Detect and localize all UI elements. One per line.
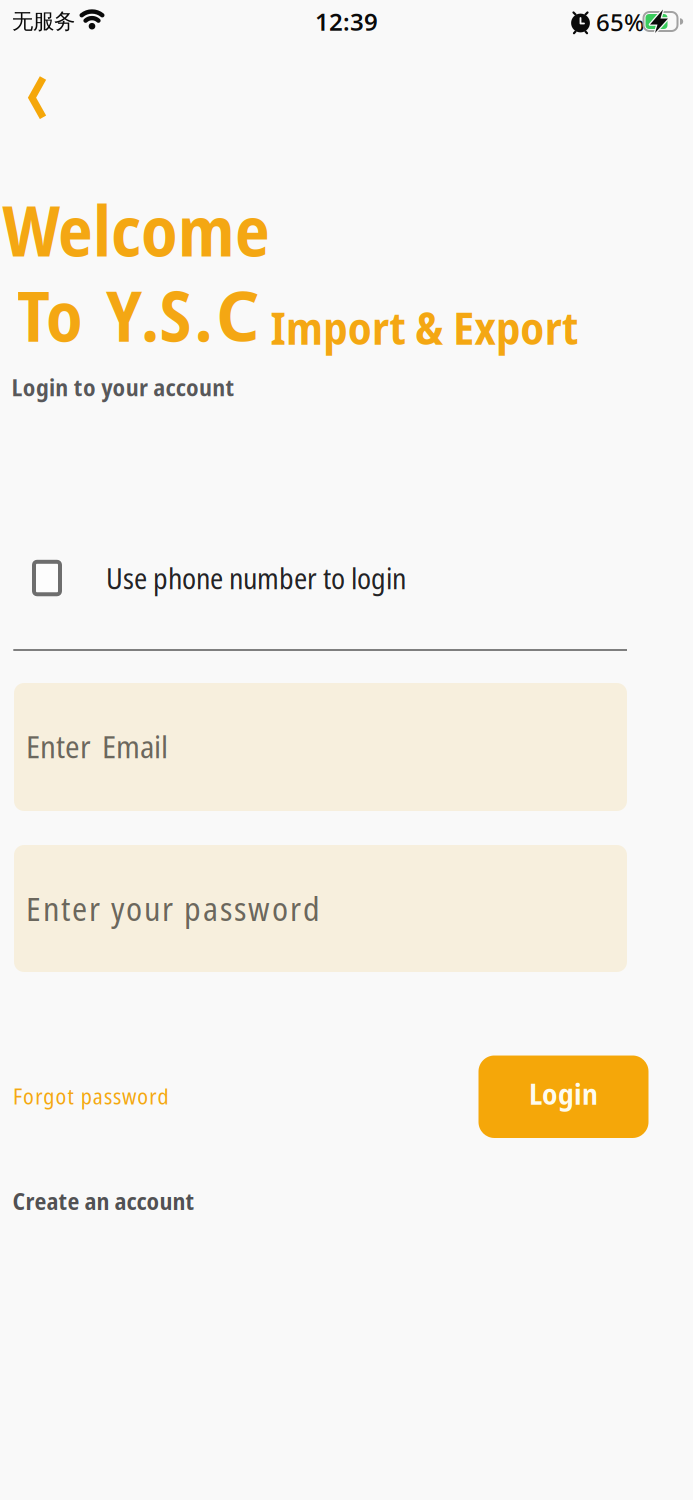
button[interactable]: Login [478,1055,648,1138]
staticText: 无服务 [12,8,75,35]
staticText: Login to your account [11,371,234,403]
staticText: Welcome [3,182,270,277]
button[interactable]: Enter Email [14,683,627,811]
staticText: Forgot password [13,1081,168,1111]
staticText: Y [106,268,142,362]
button[interactable]: Forgot password [13,1081,168,1111]
staticText: C [216,268,260,361]
button[interactable]: Create an account [12,1185,194,1217]
staticText: Import & Export [270,296,578,358]
staticText: Enter your password [26,886,320,930]
staticText: 12:39 [315,5,378,38]
staticText: Use phone number to login [106,558,406,597]
staticText: Enter [26,725,91,767]
staticText: Create an account [12,1185,194,1217]
staticText: Login [529,1073,598,1113]
button[interactable]: Back [27,73,49,123]
staticText: 65% [596,5,644,38]
staticText: To [17,268,83,362]
staticText: . [194,268,212,362]
button[interactable]: Enter your password [14,845,627,972]
staticText: Email [102,725,168,767]
staticText: . [141,268,159,362]
button[interactable]: Use phone number to login [32,558,406,597]
staticText: S [159,268,191,362]
